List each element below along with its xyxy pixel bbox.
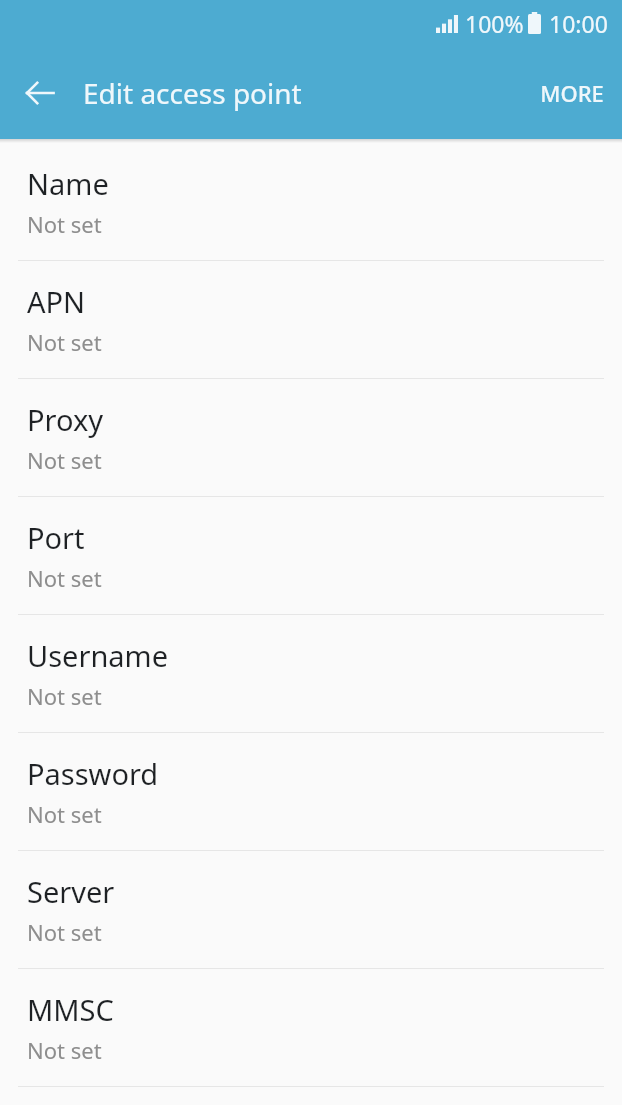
staticText: Not set [27, 1035, 102, 1065]
staticText: Password [27, 754, 159, 793]
button[interactable]: MMSC [0, 969, 622, 1086]
staticText: Username [27, 636, 169, 675]
staticText: APN [27, 282, 86, 321]
staticText: Not set [27, 327, 102, 357]
staticText: Not set [27, 917, 102, 947]
button[interactable]: Server [0, 851, 622, 968]
button[interactable]: Username [0, 615, 622, 732]
staticText: Port [27, 518, 85, 557]
staticText: 10:00 [549, 8, 608, 39]
button[interactable]: Proxy [0, 379, 622, 496]
button[interactable]: MORE [522, 64, 622, 122]
button[interactable]: Navigate up [12, 65, 68, 121]
staticText: Not set [27, 445, 102, 475]
staticText: MMSC [27, 990, 114, 1029]
staticText: Edit access point [83, 74, 302, 112]
button[interactable]: APN [0, 261, 622, 378]
staticText: 100% [465, 8, 524, 39]
staticText: MORE [540, 78, 604, 108]
staticText: Not set [27, 681, 102, 711]
button[interactable]: Port [0, 497, 622, 614]
button[interactable]: Password [0, 733, 622, 850]
staticText: Not set [27, 799, 102, 829]
staticText: Name [27, 164, 109, 203]
staticText: Not set [27, 209, 102, 239]
staticText: Proxy [27, 400, 104, 439]
button[interactable]: Name [0, 143, 622, 260]
staticText: Server [27, 872, 115, 911]
staticText: Not set [27, 563, 102, 593]
